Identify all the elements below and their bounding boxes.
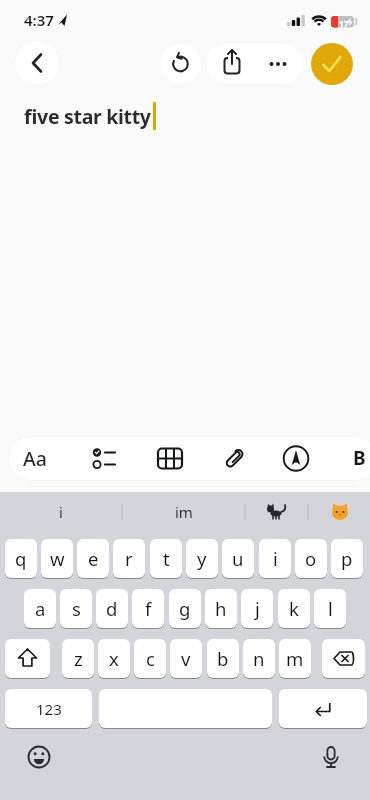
- button[interactable]: z: [62, 639, 94, 678]
- button[interactable]: [14, 40, 60, 86]
- button[interactable]: i: [259, 539, 291, 578]
- button[interactable]: m: [279, 639, 311, 678]
- button[interactable]: [81, 437, 125, 480]
- button[interactable]: c: [134, 639, 166, 678]
- button[interactable]: u: [222, 539, 254, 578]
- button[interactable]: [322, 639, 365, 678]
- staticText: d: [106, 596, 118, 621]
- button[interactable]: [17, 735, 61, 779]
- button[interactable]: [245, 492, 308, 532]
- staticText: i: [59, 502, 63, 522]
- staticText: t: [163, 546, 170, 571]
- staticText: p: [341, 546, 353, 571]
- button[interactable]: x: [98, 639, 130, 678]
- button[interactable]: B: [353, 445, 366, 471]
- staticText: s: [72, 596, 81, 621]
- staticText: n: [253, 646, 265, 671]
- staticText: w: [50, 546, 65, 571]
- staticText: v: [181, 646, 191, 671]
- button[interactable]: [279, 689, 367, 728]
- button[interactable]: d: [96, 589, 128, 628]
- button[interactable]: [311, 43, 353, 85]
- button[interactable]: f: [132, 589, 164, 628]
- button[interactable]: [148, 437, 192, 480]
- staticText: b: [217, 646, 229, 671]
- button[interactable]: l: [314, 589, 346, 628]
- button[interactable]: im: [122, 492, 245, 532]
- button[interactable]: y: [186, 539, 218, 578]
- staticText: y: [197, 546, 207, 571]
- staticText: g: [179, 596, 191, 621]
- button[interactable]: i: [0, 492, 122, 532]
- button[interactable]: k: [278, 589, 310, 628]
- staticText: u: [232, 546, 244, 571]
- button[interactable]: e: [77, 539, 109, 578]
- staticText: o: [305, 546, 317, 571]
- staticText: i: [273, 546, 278, 571]
- staticText: f: [145, 596, 152, 621]
- button[interactable]: o: [295, 539, 327, 578]
- staticText: e: [88, 546, 99, 571]
- button[interactable]: a: [24, 589, 56, 628]
- staticText: k: [289, 596, 299, 621]
- staticText: h: [215, 596, 227, 621]
- button[interactable]: [309, 735, 353, 779]
- button[interactable]: [255, 42, 304, 85]
- button[interactable]: s: [60, 589, 92, 628]
- staticText: l: [328, 596, 333, 621]
- staticText: 123: [36, 699, 62, 719]
- staticText: r: [125, 546, 133, 571]
- staticText: x: [109, 646, 119, 671]
- button[interactable]: [212, 437, 256, 480]
- button[interactable]: j: [241, 589, 273, 628]
- staticText: 17: [339, 18, 349, 30]
- button[interactable]: Aa: [23, 445, 47, 472]
- button[interactable]: w: [41, 539, 73, 578]
- button[interactable]: q: [5, 539, 37, 578]
- button[interactable]: h: [205, 589, 237, 628]
- button[interactable]: b: [207, 639, 239, 678]
- button[interactable]: r: [113, 539, 145, 578]
- staticText: c: [146, 646, 155, 671]
- staticText: a: [35, 596, 46, 621]
- button[interactable]: 123: [5, 689, 92, 728]
- button[interactable]: [159, 42, 202, 85]
- button[interactable]: [99, 689, 272, 728]
- staticText: 4:37: [24, 10, 54, 30]
- staticText: q: [15, 546, 27, 571]
- button[interactable]: [5, 639, 50, 678]
- button[interactable]: n: [243, 639, 275, 678]
- staticText: im: [175, 502, 193, 522]
- staticText: five star kitty: [24, 103, 151, 130]
- button[interactable]: v: [170, 639, 202, 678]
- staticText: z: [74, 646, 83, 671]
- button[interactable]: [205, 42, 255, 85]
- button[interactable]: g: [169, 589, 201, 628]
- button[interactable]: t: [150, 539, 182, 578]
- button[interactable]: p: [331, 539, 363, 578]
- button[interactable]: [274, 437, 318, 480]
- staticText: m: [286, 646, 304, 671]
- button[interactable]: [308, 492, 370, 532]
- staticText: j: [255, 596, 260, 621]
